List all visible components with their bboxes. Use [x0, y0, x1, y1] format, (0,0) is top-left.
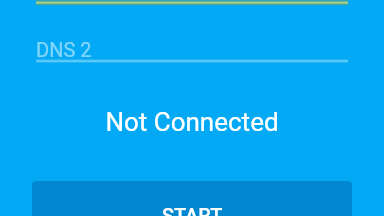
button[interactable]: START	[32, 181, 352, 216]
staticText: DNS 2	[36, 38, 92, 61]
staticText: START	[162, 204, 223, 216]
button[interactable]: DNS 2 address field	[36, 22, 348, 63]
staticText: Not Connected	[0, 107, 384, 137]
